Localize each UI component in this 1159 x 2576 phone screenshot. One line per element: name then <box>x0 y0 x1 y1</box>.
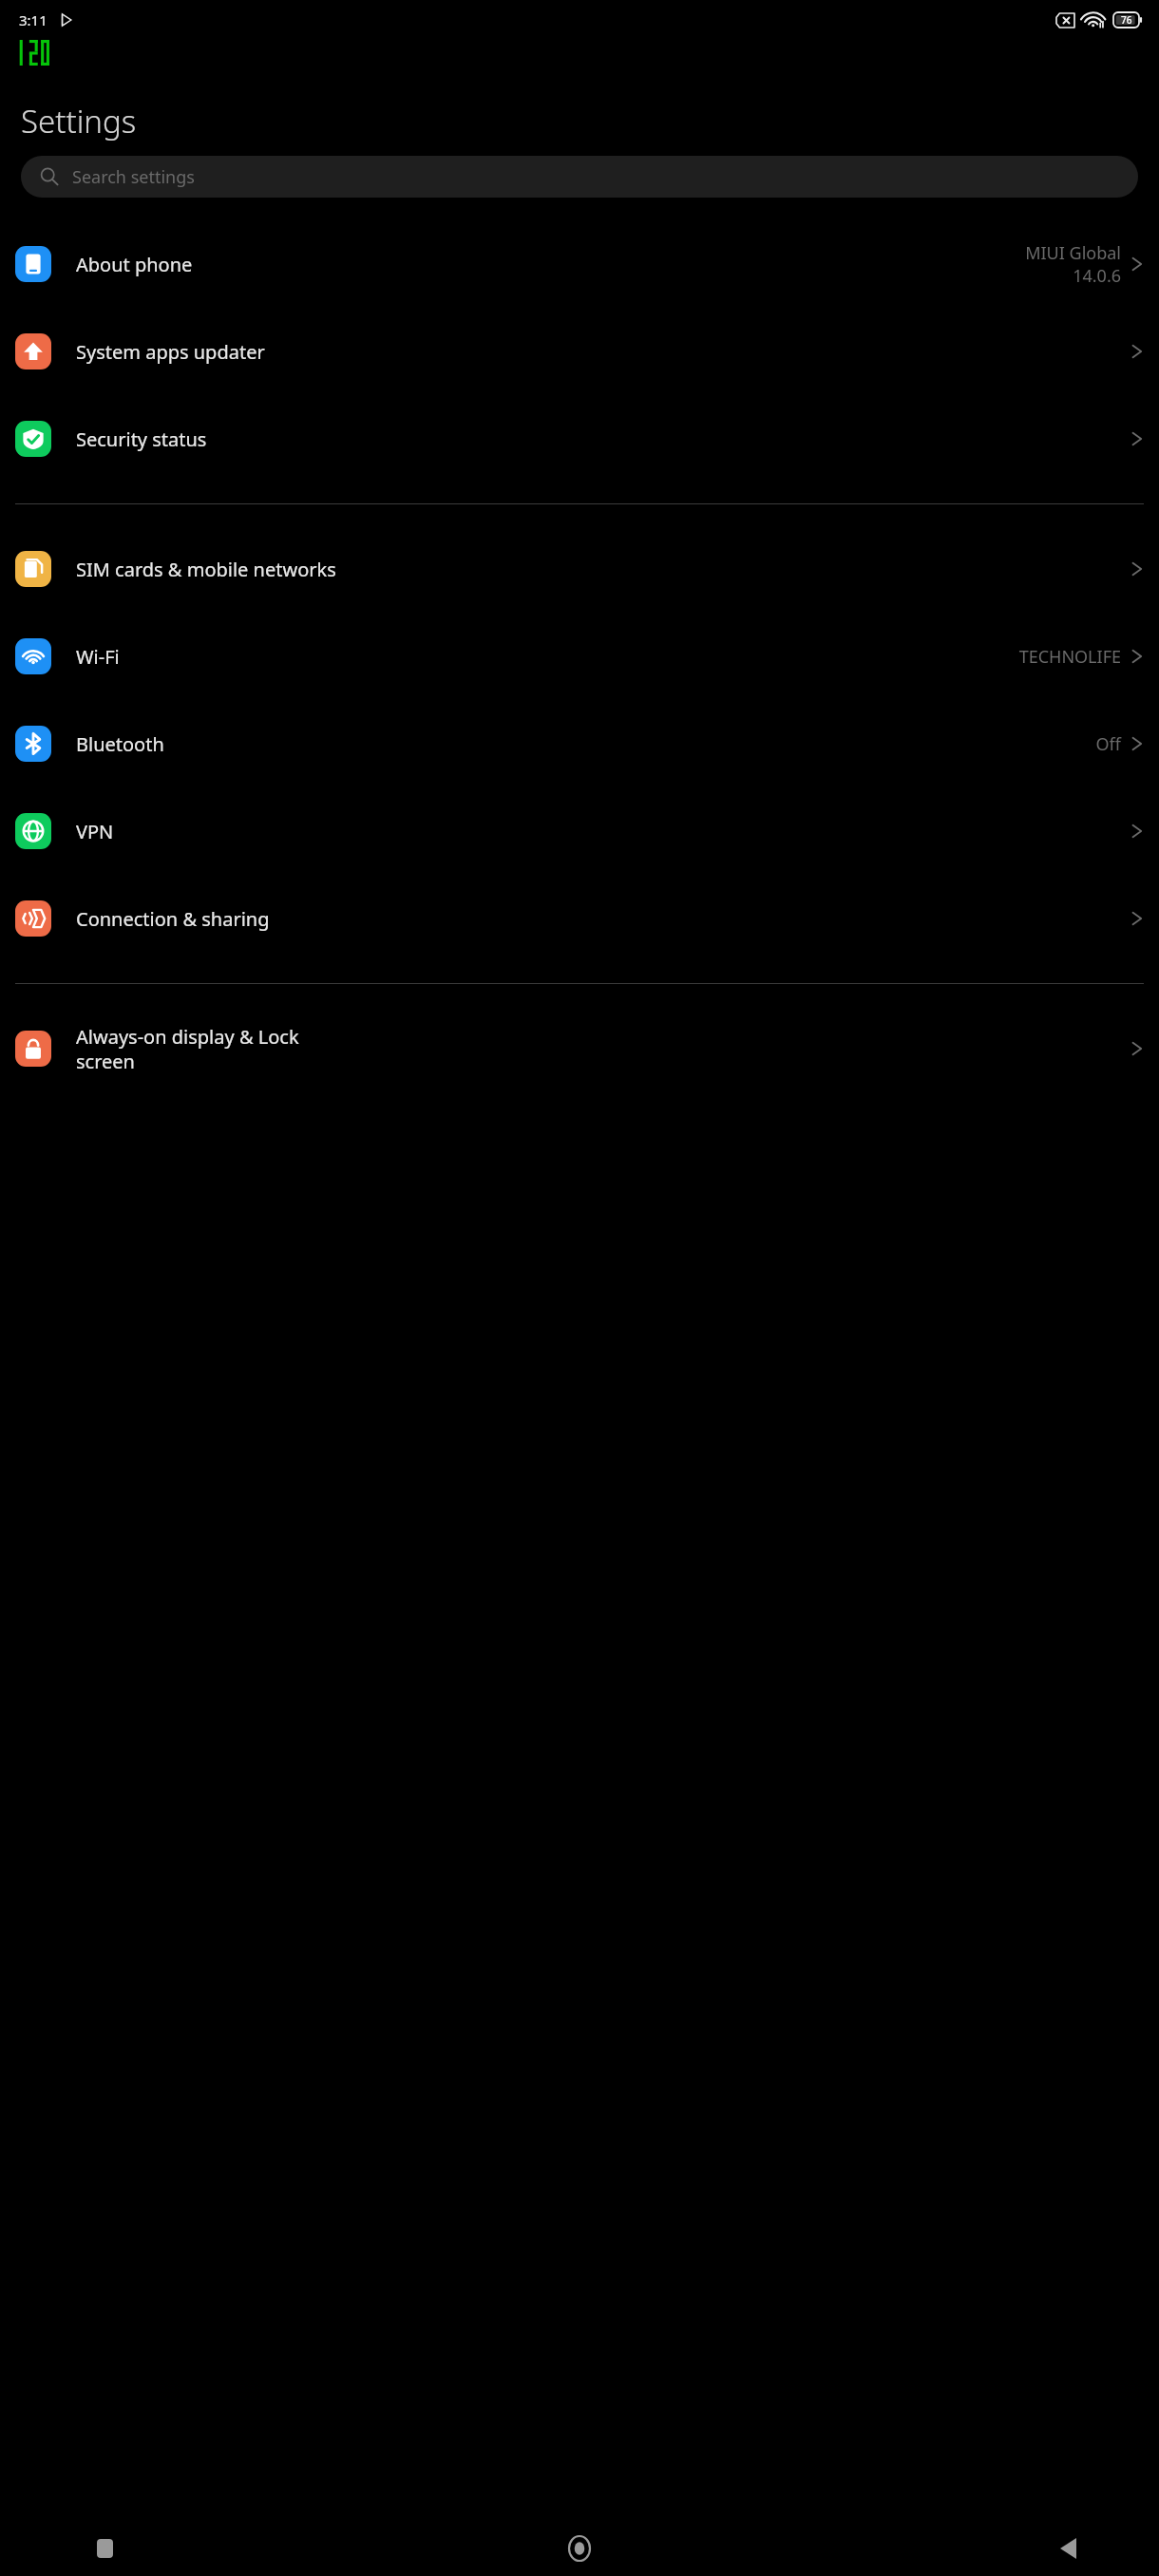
button[interactable]: SIM cards <box>0 525 1159 613</box>
staticText: 76 <box>1121 13 1132 27</box>
staticText: VPN <box>76 819 1130 844</box>
button[interactable]: VPN <box>0 787 1159 875</box>
staticText: Bluetooth <box>76 731 1095 757</box>
button[interactable]: Connection and sharing <box>0 875 1159 962</box>
button[interactable]: Search settings <box>21 156 1138 198</box>
button[interactable]: Wi-Fi <box>0 613 1159 700</box>
staticText: 3:11 <box>19 10 47 29</box>
staticText: Off <box>1095 732 1121 756</box>
button[interactable]: Security status <box>0 395 1159 483</box>
button[interactable]: Always-on display <box>0 1005 1159 1092</box>
staticText: Connection & sharing <box>76 906 1130 932</box>
staticText: TECHNOLIFE <box>1018 645 1121 669</box>
staticText: About phone <box>76 252 1025 277</box>
staticText: Settings <box>21 100 137 142</box>
staticText: MIUI Global 14.0.6 <box>1025 241 1121 287</box>
staticText: Security status <box>76 426 1130 452</box>
staticText: Search settings <box>72 165 195 189</box>
button[interactable]: Back <box>1045 2521 1159 2576</box>
button[interactable]: Home <box>527 2521 632 2576</box>
button[interactable]: Recents <box>0 2521 114 2576</box>
staticText: SIM cards & mobile networks <box>76 557 1130 582</box>
staticText: Wi-Fi <box>76 644 1018 670</box>
button[interactable]: About phone <box>0 220 1159 308</box>
staticText: Always-on display & Lock screen <box>76 1024 1130 1073</box>
button[interactable]: System apps updater <box>0 308 1159 395</box>
staticText: System apps updater <box>76 339 1130 365</box>
button[interactable]: Bluetooth <box>0 700 1159 787</box>
